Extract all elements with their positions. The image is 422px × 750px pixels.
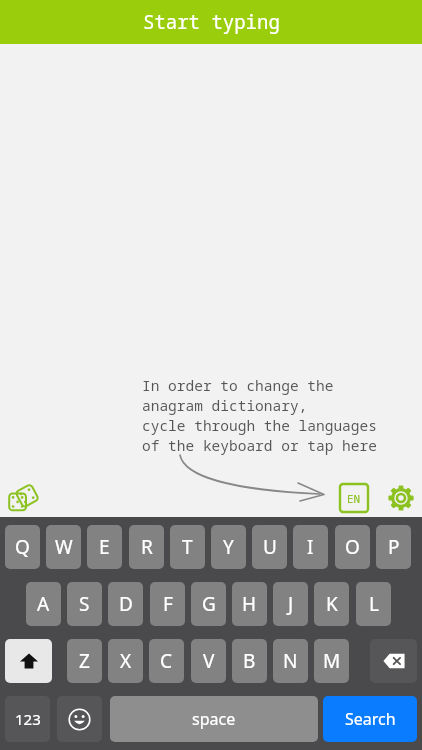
staticText: L	[369, 591, 379, 617]
button[interactable]: Q	[5, 525, 40, 569]
staticText: D	[119, 591, 133, 617]
button[interactable]: W	[46, 525, 81, 569]
staticText: cycle through the languages	[142, 415, 377, 435]
button[interactable]: Z	[67, 639, 102, 683]
button[interactable]: EN	[340, 484, 368, 512]
button[interactable]: U	[252, 525, 287, 569]
staticText: Start typing	[143, 9, 280, 35]
button[interactable]: F	[150, 582, 185, 626]
button[interactable]: R	[129, 525, 164, 569]
staticText: F	[163, 591, 173, 617]
button[interactable]: K	[314, 582, 349, 626]
staticText: C	[160, 648, 173, 674]
button[interactable]: V	[191, 639, 226, 683]
staticText: EN	[347, 491, 361, 506]
staticText: G	[202, 591, 216, 617]
button[interactable]: A	[26, 582, 61, 626]
button[interactable]: Emoji	[57, 696, 102, 742]
staticText: Y	[223, 534, 234, 560]
staticText: M	[323, 648, 341, 674]
button[interactable]: X	[108, 639, 143, 683]
button[interactable]: space	[110, 696, 318, 742]
button[interactable]: Anagram dice	[2, 480, 42, 516]
staticText: of the keyboard or tap here	[142, 435, 377, 455]
staticText: O	[345, 534, 360, 560]
button[interactable]: T	[170, 525, 205, 569]
staticText: E	[99, 534, 110, 560]
button[interactable]: G	[191, 582, 226, 626]
staticText: Q	[15, 534, 30, 560]
staticText: H	[242, 591, 257, 617]
button[interactable]: I	[293, 525, 328, 569]
button[interactable]: H	[232, 582, 267, 626]
staticText: X	[120, 648, 132, 674]
button[interactable]: S	[67, 582, 102, 626]
staticText: B	[243, 648, 256, 674]
staticText: Search	[345, 708, 396, 730]
staticText: A	[37, 591, 50, 617]
staticText: U	[263, 534, 277, 560]
button[interactable]: Search	[323, 696, 417, 742]
button[interactable]: B	[232, 639, 267, 683]
button[interactable]: Backspace	[370, 639, 417, 683]
button[interactable]: O	[335, 525, 370, 569]
staticText: T	[182, 534, 193, 560]
staticText: space	[192, 708, 236, 730]
staticText: P	[388, 534, 400, 560]
staticText: S	[79, 591, 90, 617]
button[interactable]: 123	[5, 696, 50, 742]
staticText: W	[55, 534, 73, 560]
button[interactable]: C	[149, 639, 184, 683]
button[interactable]: D	[108, 582, 143, 626]
button[interactable]: E	[87, 525, 122, 569]
button[interactable]: Settings	[386, 483, 416, 513]
staticText: K	[326, 591, 338, 617]
staticText: anagram dictionary,	[142, 395, 308, 415]
staticText: V	[203, 648, 215, 674]
staticText: Z	[79, 648, 90, 674]
staticText: J	[288, 591, 294, 617]
button[interactable]: Y	[211, 525, 246, 569]
staticText: N	[283, 648, 298, 674]
button[interactable]: P	[376, 525, 411, 569]
staticText: R	[141, 534, 153, 560]
staticText: I	[307, 534, 314, 560]
staticText: 123	[15, 709, 41, 729]
button[interactable]: L	[356, 582, 391, 626]
staticText: In order to change the	[142, 375, 334, 395]
button[interactable]: J	[273, 582, 308, 626]
button[interactable]: N	[273, 639, 308, 683]
button[interactable]: M	[314, 639, 349, 683]
button[interactable]: Shift	[5, 639, 52, 683]
